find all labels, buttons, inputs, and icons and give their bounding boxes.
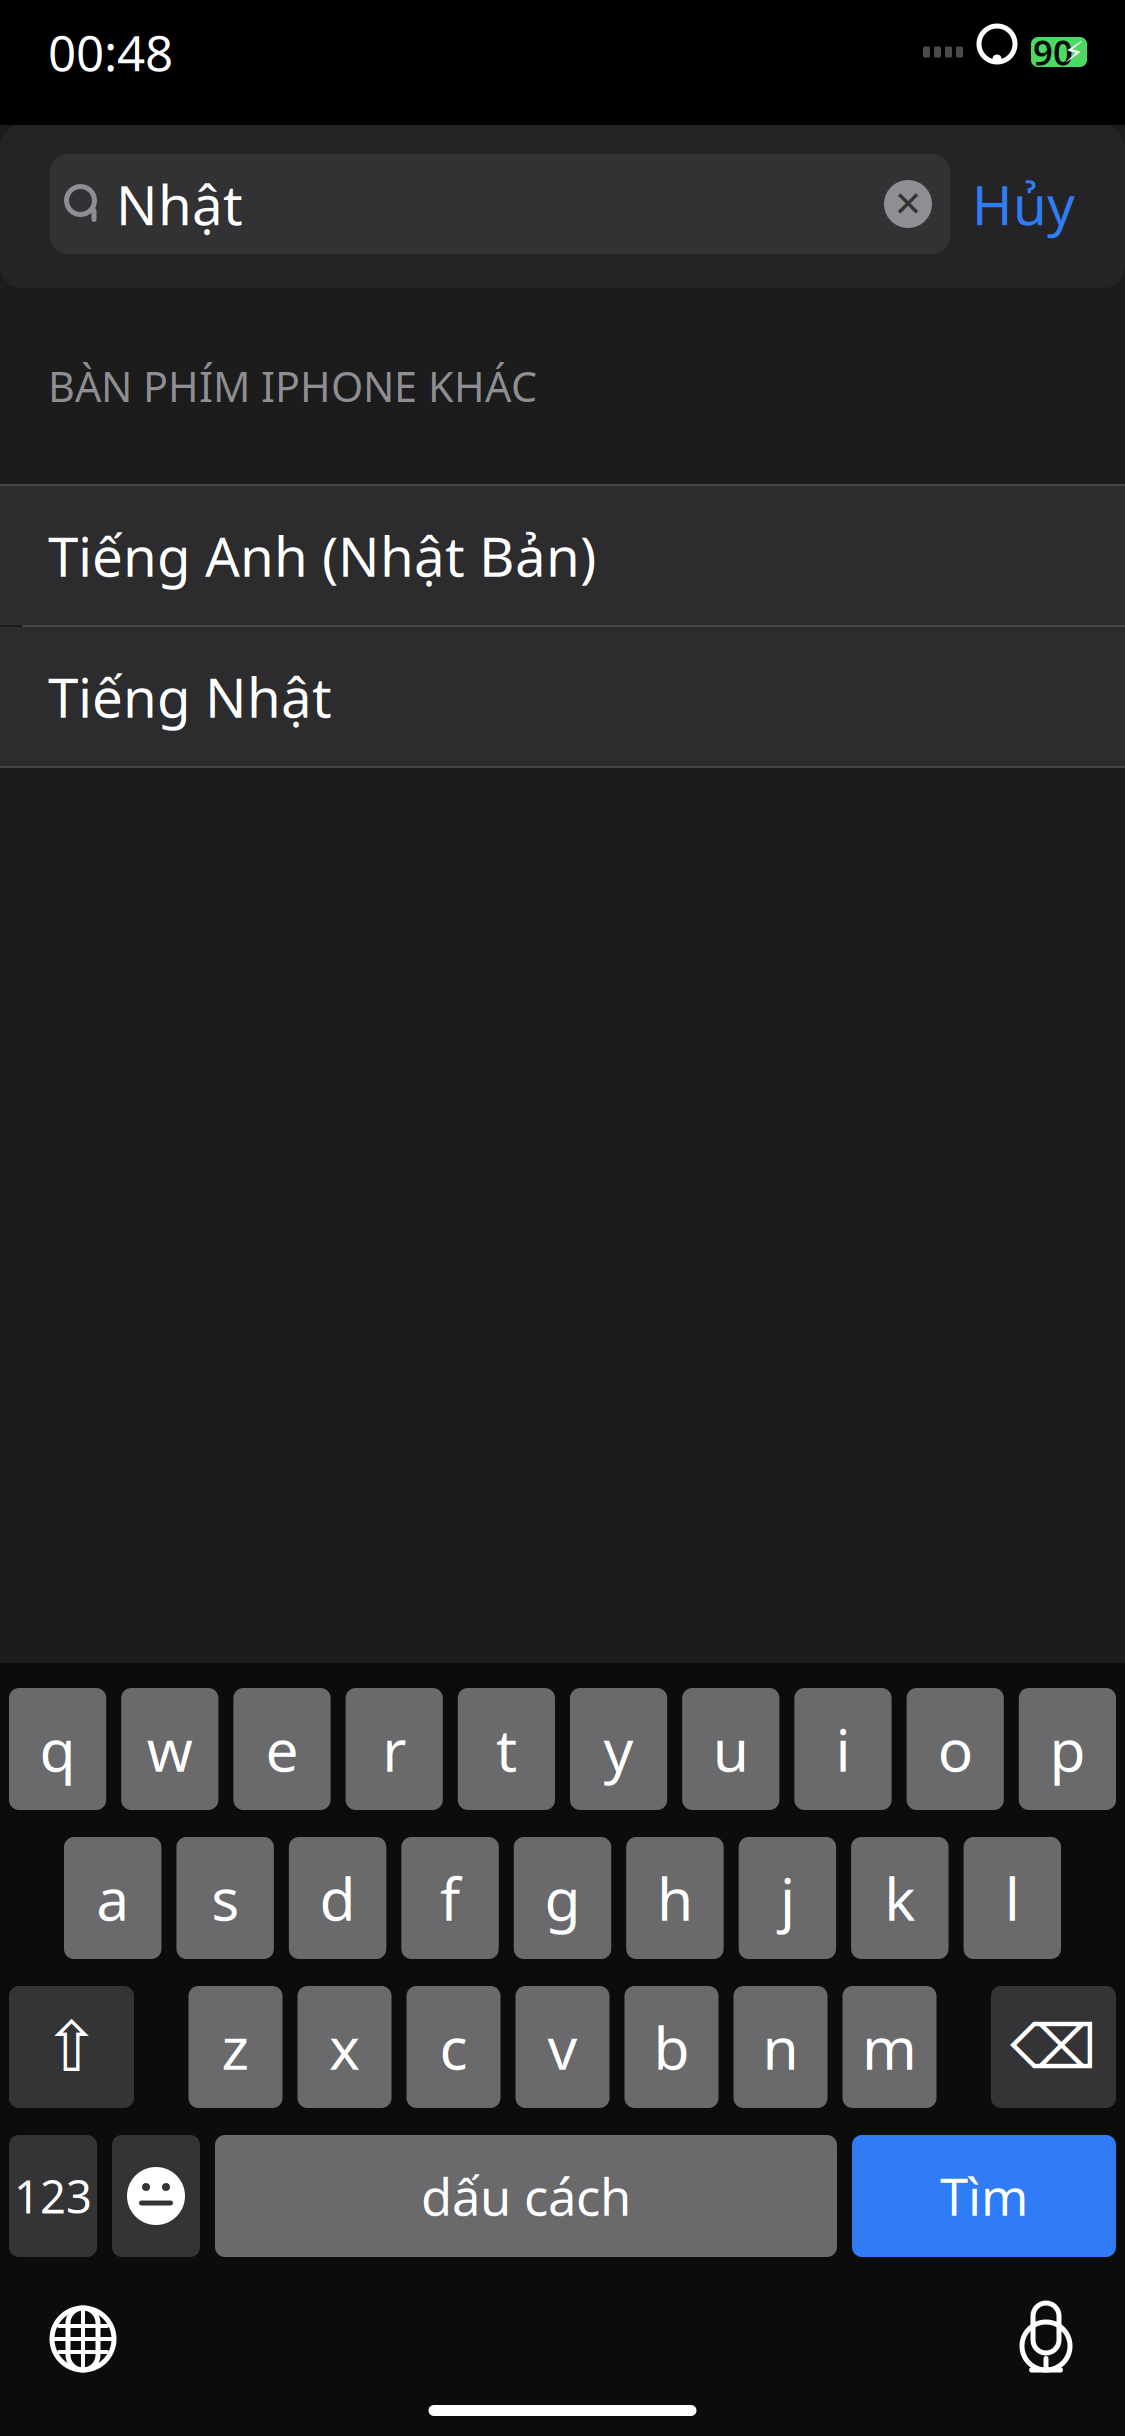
button[interactable]: Tìm [852, 2135, 1116, 2257]
staticText: o [938, 1710, 973, 1788]
button[interactable]: j [739, 1837, 836, 1959]
staticText: Tiếng Nhật [48, 660, 332, 733]
button[interactable]: i [794, 1688, 892, 1810]
button[interactable]: q [9, 1688, 106, 1810]
staticText: ⇧ [42, 2008, 100, 2086]
button[interactable]: h [626, 1837, 724, 1959]
staticText: Nhật [116, 168, 243, 240]
staticText: dấu cách [421, 2162, 631, 2230]
staticText: p [1049, 1710, 1085, 1788]
staticText: Hủy [972, 168, 1075, 240]
button[interactable]: r [346, 1688, 443, 1810]
button[interactable]: k [851, 1837, 948, 1959]
button[interactable]: Tiếng Nhật [0, 627, 1125, 766]
staticText: r [382, 1710, 406, 1788]
staticText: Tìm [940, 2162, 1028, 2230]
staticText: t [496, 1710, 517, 1788]
button[interactable]: Tiếng Anh (Nhật Bản) [0, 486, 1125, 625]
button[interactable]: f [401, 1837, 499, 1959]
staticText: m [862, 2008, 917, 2086]
staticText: f [440, 1859, 460, 1937]
staticText: e [265, 1710, 298, 1788]
staticText: ⌫ [1010, 2012, 1097, 2082]
button[interactable]: u [682, 1688, 779, 1810]
button[interactable]: w [121, 1688, 218, 1810]
button[interactable]: c [406, 1986, 500, 2108]
staticText: q [40, 1710, 76, 1788]
staticText: 123 [14, 2166, 92, 2226]
button[interactable]: Hủy [950, 154, 1097, 254]
button[interactable]: x [297, 1986, 391, 2108]
staticText: b [653, 2008, 689, 2086]
staticText: n [762, 2008, 798, 2086]
staticText: y [604, 1710, 634, 1788]
button[interactable]: p [1019, 1688, 1116, 1810]
staticText: 90 [1033, 29, 1073, 75]
button[interactable]: y [570, 1688, 667, 1810]
button[interactable]: d [289, 1837, 386, 1959]
button[interactable]: e [233, 1688, 331, 1810]
staticText: v [547, 2008, 577, 2086]
staticText: c [439, 2008, 467, 2086]
button[interactable]: Clear text [884, 180, 950, 228]
button[interactable]: Delete [991, 1986, 1116, 2108]
staticText: s [211, 1859, 239, 1937]
button[interactable]: b [624, 1986, 718, 2108]
button[interactable]: 123 [9, 2135, 97, 2257]
staticText: k [884, 1859, 915, 1937]
staticText: z [221, 2008, 249, 2086]
staticText: 00:48 [48, 19, 173, 85]
staticText: ✕ [893, 184, 922, 224]
staticText: i [835, 1710, 850, 1788]
button[interactable]: m [842, 1986, 936, 2108]
staticText: ⚡︎ [1063, 35, 1084, 69]
button[interactable]: Emoji [112, 2135, 200, 2257]
staticText: g [544, 1859, 580, 1937]
button[interactable]: l [964, 1837, 1061, 1959]
staticText: a [96, 1859, 129, 1937]
staticText: u [713, 1710, 749, 1788]
staticText: Tiếng Anh (Nhật Bản) [48, 519, 596, 592]
staticText: x [329, 2008, 360, 2086]
button[interactable]: v [515, 1986, 609, 2108]
button[interactable]: n [733, 1986, 827, 2108]
button[interactable]: t [458, 1688, 555, 1810]
staticText: w [147, 1710, 193, 1788]
button[interactable]: dấu cách [215, 2135, 837, 2257]
button[interactable]: z [188, 1986, 282, 2108]
staticText: j [780, 1859, 795, 1937]
button[interactable]: g [514, 1837, 611, 1959]
staticText: d [320, 1859, 356, 1937]
button[interactable]: Shift [9, 1986, 134, 2108]
button[interactable]: Next keyboard [0, 2304, 148, 2374]
staticText: h [657, 1859, 693, 1937]
staticText: l [1005, 1859, 1020, 1937]
button[interactable]: s [176, 1837, 274, 1959]
button[interactable]: a [64, 1837, 161, 1959]
staticText: BÀN PHÍM IPHONE KHÁC [48, 359, 537, 413]
button[interactable]: o [907, 1688, 1004, 1810]
button[interactable]: Dictation [981, 2301, 1125, 2377]
